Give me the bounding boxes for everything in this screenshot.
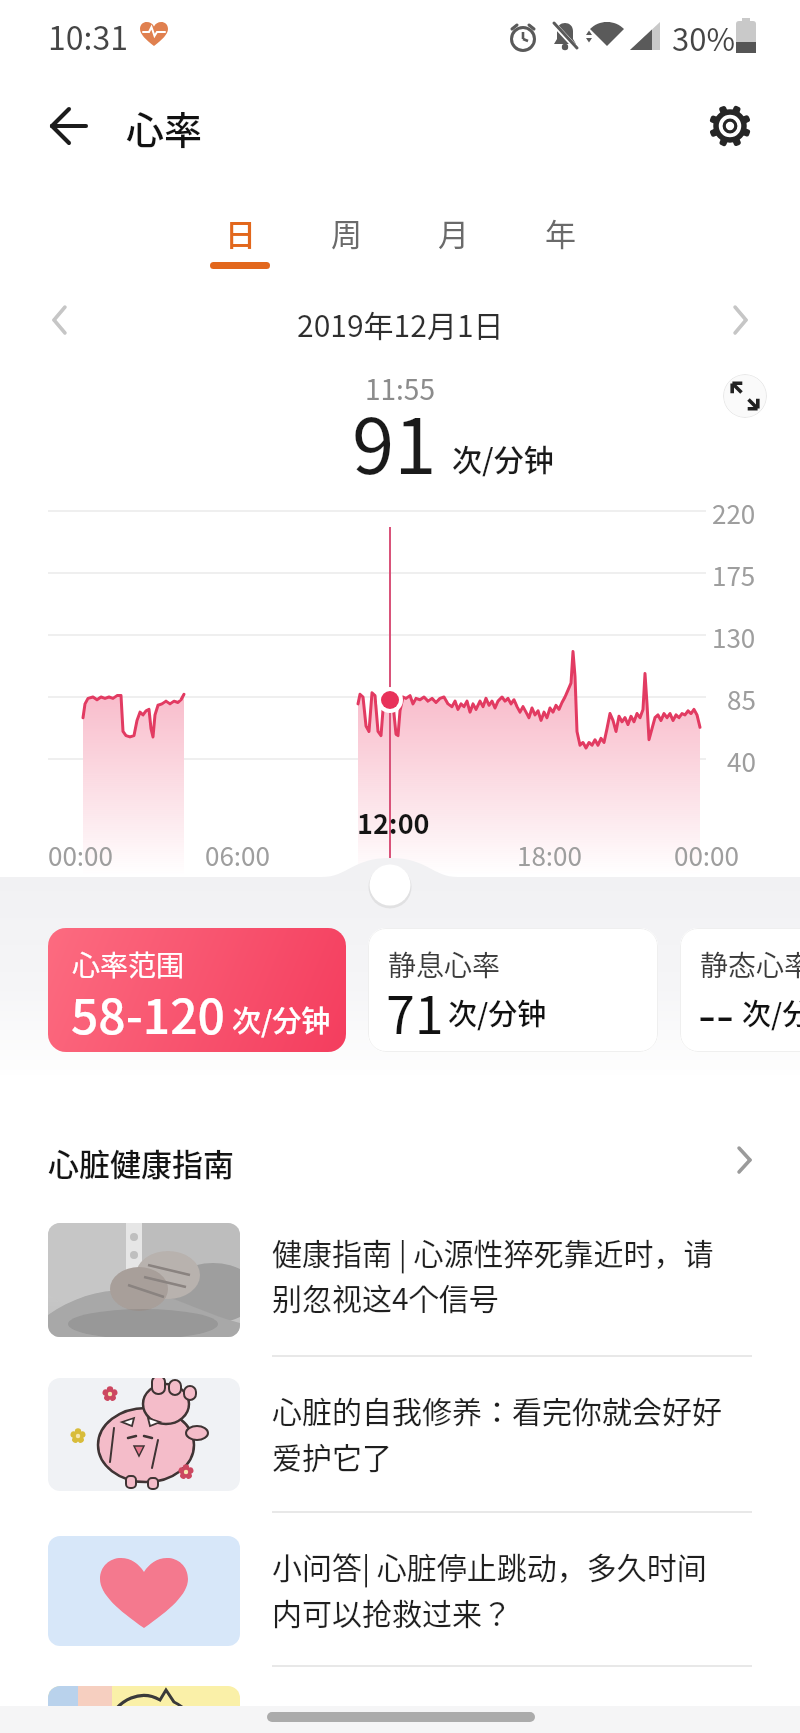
staticText: 心率 — [126, 100, 203, 155]
button[interactable] — [36, 96, 100, 156]
staticText: 85 — [727, 680, 756, 718]
staticText: 40 — [727, 742, 756, 780]
staticText: 小问答| 心脏停止跳动，多久时间 — [272, 1544, 707, 1587]
staticText: 周 — [331, 210, 362, 255]
staticText: 内可以抢救过来？ — [272, 1590, 512, 1633]
staticText: 18:00 — [517, 836, 582, 874]
staticText: 130 — [712, 618, 756, 656]
button[interactable]: 心率范围 — [48, 928, 346, 1052]
staticText: 220 — [712, 494, 756, 532]
staticText: 11:55 — [365, 368, 435, 409]
button[interactable]: 日 — [195, 210, 285, 274]
button[interactable] — [40, 1214, 760, 1344]
button[interactable]: 心脏健康指南 — [40, 1134, 760, 1188]
button[interactable] — [723, 374, 767, 418]
staticText: 00:00 — [48, 836, 113, 874]
staticText: 12:00 — [357, 803, 430, 842]
staticText: 175 — [712, 556, 756, 594]
staticText: 00:00 — [674, 836, 739, 874]
staticText: 健康指南 | 心源性猝死靠近时，请 — [272, 1230, 714, 1273]
button[interactable] — [40, 1528, 760, 1658]
staticText: 年 — [545, 210, 576, 255]
staticText: 心脏健康指南 — [48, 1140, 234, 1185]
button[interactable]: 静息心率 — [368, 928, 658, 1052]
staticText: 10:31 — [48, 13, 128, 59]
staticText: 2019年12月1日 — [297, 302, 504, 345]
staticText: 58-120 — [71, 978, 225, 1048]
staticText: 月 — [438, 210, 469, 255]
staticText: 爱护它了 — [272, 1434, 392, 1477]
staticText: 06:00 — [205, 836, 270, 874]
staticText: 71 — [386, 974, 444, 1049]
button[interactable]: 静态心率 — [680, 928, 800, 1052]
staticText: 91 — [352, 386, 437, 496]
button[interactable] — [40, 1370, 760, 1500]
staticText: 日 — [225, 210, 256, 255]
button[interactable] — [700, 96, 760, 156]
button[interactable] — [368, 863, 412, 907]
staticText: 30% — [672, 15, 735, 60]
staticText: 心率范围 — [72, 944, 185, 985]
staticText: 别忽视这4个信号 — [272, 1275, 499, 1318]
staticText: 次/分钟 — [452, 436, 554, 479]
button[interactable]: 周 — [301, 210, 391, 274]
button[interactable]: 月 — [408, 210, 498, 274]
staticText: 静息心率 — [388, 944, 501, 985]
button[interactable] — [728, 304, 752, 336]
staticText: 静态心率 — [700, 944, 800, 985]
staticText: 心脏的自我修养：看完你就会好好 — [272, 1388, 722, 1431]
staticText: 次/分 — [742, 991, 800, 1033]
button[interactable]: 年 — [515, 210, 605, 274]
staticText: 次/分钟 — [232, 998, 331, 1040]
staticText: -- — [698, 974, 735, 1049]
staticText: 次/分钟 — [448, 991, 547, 1033]
button[interactable] — [48, 304, 72, 336]
